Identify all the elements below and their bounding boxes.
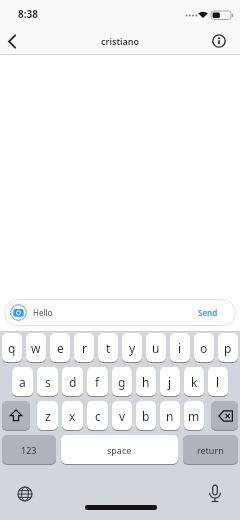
staticText: s	[45, 374, 51, 390]
button[interactable]: r	[74, 333, 94, 363]
button[interactable]: g	[112, 367, 132, 397]
staticText: r	[82, 340, 87, 356]
button[interactable]: c	[87, 401, 108, 431]
staticText: a	[19, 374, 26, 390]
staticText: u	[152, 340, 160, 356]
button[interactable]: p	[218, 333, 238, 363]
staticText: x	[69, 408, 76, 424]
button[interactable]: u	[146, 333, 166, 363]
button[interactable]	[2, 401, 30, 431]
staticText: f	[95, 374, 100, 390]
staticText: m	[188, 408, 200, 424]
button[interactable]: h	[136, 367, 156, 397]
staticText: t	[106, 340, 111, 356]
staticText: Hello	[33, 307, 53, 318]
button[interactable]: j	[160, 367, 180, 397]
button[interactable]: e	[50, 333, 70, 363]
button[interactable]: n	[160, 401, 180, 431]
staticText: j	[168, 374, 172, 390]
button[interactable]: w	[26, 333, 46, 363]
button[interactable]: v	[112, 401, 132, 431]
button[interactable]	[207, 484, 223, 504]
button[interactable]	[10, 304, 27, 321]
button[interactable]: t	[98, 333, 118, 363]
staticText: c	[95, 408, 101, 424]
staticText: w	[31, 340, 41, 356]
button[interactable]: f	[87, 367, 108, 397]
button[interactable]: y	[122, 333, 142, 363]
button[interactable]	[211, 401, 238, 431]
staticText: Send	[198, 307, 218, 318]
staticText: h	[142, 374, 150, 390]
button[interactable]: Send	[188, 299, 228, 326]
staticText: q	[8, 340, 16, 356]
staticText: b	[142, 408, 150, 424]
button[interactable]: o	[194, 333, 214, 363]
button[interactable]: 123	[2, 435, 56, 465]
staticText: p	[224, 340, 232, 356]
button[interactable]: k	[184, 367, 204, 397]
staticText: o	[200, 340, 208, 356]
button[interactable]: d	[62, 367, 83, 397]
button[interactable]: l	[208, 367, 228, 397]
staticText: k	[191, 374, 198, 390]
staticText: y	[129, 340, 136, 356]
staticText: z	[45, 408, 51, 424]
staticText: cristiano	[101, 35, 140, 47]
staticText: n	[166, 408, 174, 424]
button[interactable]	[2, 31, 22, 51]
button[interactable]	[17, 486, 33, 502]
staticText: space	[107, 444, 132, 456]
button[interactable]: s	[37, 367, 58, 397]
staticText: d	[69, 374, 77, 390]
button[interactable]: b	[136, 401, 156, 431]
staticText: 123	[21, 444, 37, 456]
button[interactable]	[211, 33, 227, 49]
staticText: return	[197, 444, 224, 456]
button[interactable]: return	[183, 435, 238, 465]
staticText: v	[119, 408, 126, 424]
staticText: l	[216, 374, 220, 390]
staticText: i	[178, 340, 182, 356]
button[interactable]	[4, 299, 236, 326]
button[interactable]: i	[170, 333, 190, 363]
button[interactable]: space	[61, 435, 178, 465]
button[interactable]: q	[2, 333, 22, 363]
button[interactable]: m	[184, 401, 204, 431]
button[interactable]: z	[37, 401, 58, 431]
button[interactable]: x	[62, 401, 83, 431]
staticText: 8:38	[18, 7, 38, 20]
staticText: g	[118, 374, 126, 390]
staticText: e	[57, 340, 64, 356]
button[interactable]: a	[12, 367, 33, 397]
